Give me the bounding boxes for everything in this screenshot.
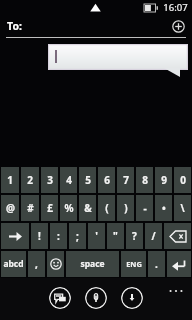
- button[interactable]: #: [21, 195, 39, 221]
- staticText: 5: [85, 173, 91, 187]
- button[interactable]: 8: [136, 167, 153, 193]
- button[interactable]: Send message: [49, 287, 71, 309]
- button[interactable]: (: [98, 195, 115, 221]
- button[interactable]: Enter: [167, 251, 191, 277]
- staticText: ;: [76, 229, 79, 243]
- staticText: To:: [7, 19, 22, 33]
- button[interactable]: [48, 44, 188, 77]
- button[interactable]: /: [145, 223, 162, 249]
- staticText: 3: [47, 173, 53, 187]
- button[interactable]: 5: [79, 167, 96, 193]
- staticText: ENG: [126, 259, 142, 269]
- button[interactable]: Add recipient: [170, 18, 186, 34]
- staticText: 4: [66, 173, 72, 187]
- button[interactable]: Shift: [1, 223, 29, 249]
- button[interactable]: ?: [126, 223, 143, 249]
- button[interactable]: ENG: [121, 251, 146, 277]
- button[interactable]: \: [174, 195, 191, 221]
- staticText: 8: [142, 173, 148, 187]
- staticText: 7: [123, 173, 129, 187]
- button[interactable]: ": [107, 223, 124, 249]
- staticText: &: [84, 201, 92, 215]
- button[interactable]: 9: [155, 167, 172, 193]
- staticText: abcd: [3, 258, 24, 270]
- staticText: /: [151, 229, 156, 243]
- staticText: .: [155, 257, 158, 271]
- staticText: ): [124, 201, 128, 215]
- button[interactable]: space: [66, 251, 119, 277]
- staticText: •: [162, 201, 166, 215]
- button[interactable]: £: [41, 195, 58, 221]
- button[interactable]: 7: [117, 167, 134, 193]
- staticText: #: [27, 201, 34, 215]
- staticText: 16:07: [163, 1, 188, 14]
- staticText: @: [6, 201, 15, 215]
- button[interactable]: %: [60, 195, 77, 221]
- staticText: 2: [27, 173, 33, 187]
- button[interactable]: Attach: [85, 287, 107, 309]
- staticText: ": [113, 229, 118, 243]
- button[interactable]: :: [50, 223, 67, 249]
- button[interactable]: 2: [21, 167, 39, 193]
- button[interactable]: 1: [1, 167, 19, 193]
- button[interactable]: abcd: [1, 251, 26, 277]
- staticText: \: [180, 201, 185, 215]
- button[interactable]: 0: [174, 167, 191, 193]
- button[interactable]: Voice input: [121, 287, 143, 309]
- button[interactable]: &: [79, 195, 96, 221]
- staticText: 9: [161, 173, 167, 187]
- button[interactable]: More options: [165, 284, 187, 298]
- staticText: ': [95, 229, 98, 243]
- staticText: ,: [35, 257, 38, 271]
- button[interactable]: ): [117, 195, 134, 221]
- button[interactable]: @: [1, 195, 19, 221]
- button[interactable]: .: [148, 251, 165, 277]
- button[interactable]: Backspace: [164, 223, 191, 249]
- staticText: %: [64, 201, 74, 215]
- staticText: -: [143, 201, 147, 215]
- staticText: 0: [180, 173, 186, 187]
- button[interactable]: To:: [0, 15, 192, 37]
- button[interactable]: 6: [98, 167, 115, 193]
- button[interactable]: Emoji: [47, 251, 64, 277]
- button[interactable]: ,: [28, 251, 45, 277]
- staticText: £: [47, 201, 53, 215]
- staticText: 1: [7, 173, 13, 187]
- staticText: space: [80, 258, 105, 270]
- button[interactable]: 4: [60, 167, 77, 193]
- button[interactable]: 3: [41, 167, 58, 193]
- button[interactable]: ': [88, 223, 105, 249]
- button[interactable]: -: [136, 195, 153, 221]
- button[interactable]: !: [31, 223, 48, 249]
- staticText: (: [105, 201, 109, 215]
- staticText: !: [38, 229, 41, 243]
- button[interactable]: ;: [69, 223, 86, 249]
- staticText: :: [57, 229, 60, 243]
- staticText: ?: [132, 229, 137, 243]
- button[interactable]: •: [155, 195, 172, 221]
- staticText: 6: [104, 173, 110, 187]
